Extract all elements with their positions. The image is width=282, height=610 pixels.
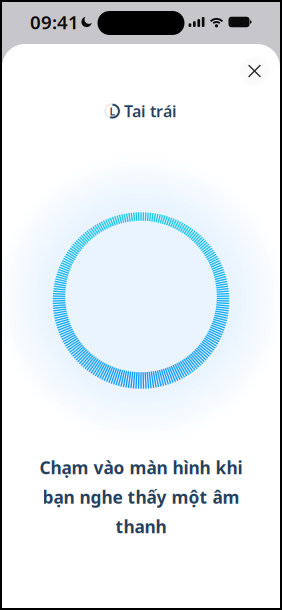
button[interactable]: Close	[240, 56, 269, 85]
staticText: bạn nghe thấy một âm	[42, 485, 239, 508]
staticText: 09:41	[30, 10, 79, 34]
staticText: thanh	[115, 515, 166, 538]
staticText: Chạm vào màn hình khi	[39, 456, 242, 479]
staticText: L	[109, 104, 115, 118]
staticText: Tai trái	[124, 100, 177, 122]
